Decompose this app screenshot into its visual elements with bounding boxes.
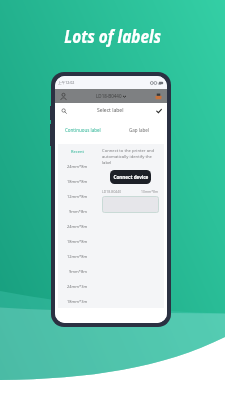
staticText: 18mm*3m bbox=[67, 299, 88, 304]
button[interactable]: 18mm*8m bbox=[58, 234, 97, 249]
staticText: 9mm*8m bbox=[69, 269, 87, 274]
button[interactable]: LD18-B0440 bbox=[96, 93, 126, 99]
button[interactable]: Recent bbox=[58, 144, 97, 159]
button[interactable]: Account bbox=[59, 92, 68, 101]
button[interactable]: 24mm*3m bbox=[58, 279, 97, 294]
staticText: 24mm*3m bbox=[67, 284, 88, 289]
staticText: 24mm*8m bbox=[67, 224, 88, 229]
staticText: 12mm*8m bbox=[67, 194, 88, 199]
staticText: 18mm*8m bbox=[67, 239, 88, 244]
staticText: 上午12:02 bbox=[58, 80, 75, 85]
button[interactable]: 18mm*8m bbox=[58, 174, 97, 189]
button[interactable]: 18mm*3m bbox=[58, 294, 97, 308]
button[interactable]: Continuous label bbox=[55, 117, 111, 142]
button[interactable]: Printer bbox=[154, 92, 163, 101]
button[interactable]: 12mm*8m bbox=[58, 249, 97, 264]
staticText: 10mm*8m bbox=[141, 189, 159, 194]
button[interactable]: Gap label bbox=[111, 117, 167, 142]
button[interactable]: Confirm bbox=[154, 106, 163, 115]
staticText: Select label bbox=[97, 107, 124, 114]
staticText: 24mm*8m bbox=[67, 164, 88, 169]
staticText: Gap label bbox=[129, 127, 149, 133]
staticText: Continuous label bbox=[65, 127, 101, 133]
button[interactable]: 24mm*8m bbox=[58, 159, 97, 174]
button[interactable]: 9mm*8m bbox=[58, 204, 97, 219]
staticText: Connect to the printer and automatically… bbox=[102, 148, 159, 166]
button[interactable]: Connect device bbox=[110, 170, 151, 184]
button[interactable]: 9mm*8m bbox=[58, 264, 97, 279]
staticText: 12mm*8m bbox=[67, 254, 88, 259]
button[interactable]: 24mm*8m bbox=[58, 219, 97, 234]
staticText: 18mm*8m bbox=[67, 179, 88, 184]
staticText: LD18-B0440 bbox=[102, 189, 122, 194]
staticText: Lots of labels bbox=[64, 24, 162, 49]
staticText: Recent bbox=[71, 149, 84, 154]
button[interactable]: Search bbox=[59, 106, 68, 115]
staticText: Connect device bbox=[113, 174, 148, 181]
staticText: LD18-B0440 bbox=[96, 93, 122, 99]
staticText: 9mm*8m bbox=[69, 209, 87, 214]
button[interactable]: 12mm*8m bbox=[58, 189, 97, 204]
